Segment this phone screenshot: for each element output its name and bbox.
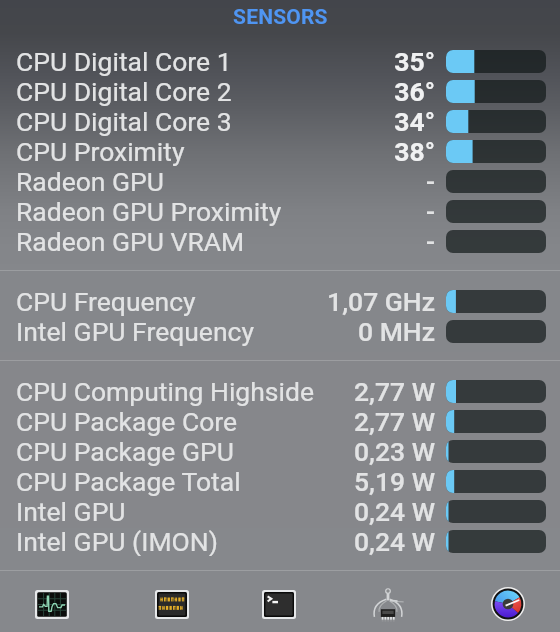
button[interactable]: Radeon GPU Proximity (0, 196, 560, 226)
staticText: 38° (394, 136, 435, 166)
staticText: CPU Package GPU (16, 436, 353, 466)
staticText: CPU Frequency (16, 286, 327, 316)
button[interactable]: System gauge (485, 582, 531, 626)
button[interactable]: CPU Computing Highside (0, 376, 560, 406)
staticText: CPU Digital Core 3 (16, 106, 394, 136)
staticText: 36° (394, 76, 435, 106)
staticText: Radeon GPU VRAM (16, 226, 425, 256)
staticText: Intel GPU (16, 496, 353, 526)
button[interactable]: Terminal (256, 582, 302, 626)
staticText: 0 MHz (358, 316, 435, 346)
staticText: SENSORS (233, 5, 328, 30)
staticText: - (425, 196, 435, 226)
button[interactable]: CPU Package GPU (0, 436, 560, 466)
button[interactable]: Radeon GPU (0, 166, 560, 196)
button[interactable]: Radeon GPU VRAM (0, 226, 560, 256)
staticText: 34° (394, 106, 435, 136)
button[interactable]: CPU Digital Core 2 (0, 76, 560, 106)
staticText: CPU Package Core (16, 406, 353, 436)
staticText: CPU Computing Highside (16, 376, 353, 406)
staticText: CPU Package Total (16, 466, 353, 496)
staticText: 0,23 W (353, 436, 435, 466)
button[interactable]: Intel GPU Frequency (0, 316, 560, 346)
staticText: 5,19 W (353, 466, 435, 496)
button[interactable]: Console log (149, 582, 195, 626)
button[interactable]: CPU Package Total (0, 466, 560, 496)
staticText: Radeon GPU Proximity (16, 196, 425, 226)
button[interactable]: CPU Digital Core 3 (0, 106, 560, 136)
staticText: 35° (394, 46, 435, 76)
staticText: 0,24 W (353, 496, 435, 526)
staticText: CPU Digital Core 2 (16, 76, 394, 106)
button[interactable]: CPU Frequency (0, 286, 560, 316)
button[interactable]: Hardware probe (365, 582, 411, 626)
button[interactable]: CPU Package Core (0, 406, 560, 436)
staticText: Intel GPU Frequency (16, 316, 358, 346)
staticText: CPU Proximity (16, 136, 394, 166)
staticText: - (425, 166, 435, 196)
staticText: 2,77 W (353, 406, 435, 436)
staticText: 1,07 GHz (327, 286, 435, 316)
staticText: - (425, 226, 435, 256)
staticText: 0,24 W (353, 526, 435, 556)
button[interactable]: Activity Monitor (29, 582, 75, 626)
staticText: Radeon GPU (16, 166, 425, 196)
button[interactable]: CPU Proximity (0, 136, 560, 166)
staticText: 2,77 W (353, 376, 435, 406)
staticText: Intel GPU (IMON) (16, 526, 353, 556)
button[interactable]: CPU Digital Core 1 (0, 46, 560, 76)
button[interactable]: Intel GPU (IMON) (0, 526, 560, 556)
staticText: CPU Digital Core 1 (16, 46, 394, 76)
button[interactable]: Intel GPU (0, 496, 560, 526)
